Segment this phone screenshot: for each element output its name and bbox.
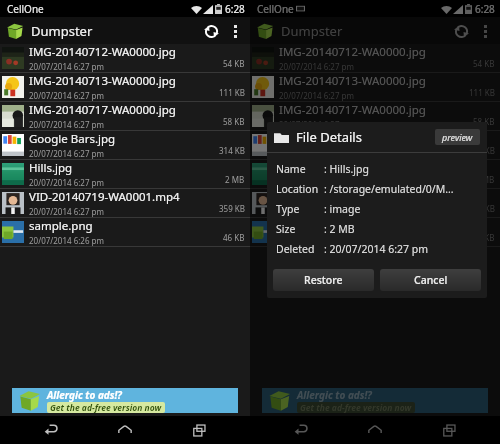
button[interactable]: Back [28, 416, 74, 444]
staticText: 111 KB [219, 87, 245, 98]
button[interactable]: Hills.jpg [0, 160, 250, 189]
button[interactable]: preview [442, 131, 473, 143]
button[interactable]: sample.png [0, 218, 250, 247]
button[interactable]: Home [352, 416, 398, 444]
staticText: 20/07/2014 6:27 pm [279, 119, 354, 130]
staticText: 6:28 [225, 2, 245, 16]
staticText: 20/07/2014 6:27 pm [279, 206, 354, 217]
staticText: : image [324, 202, 361, 216]
staticText: 20/07/2014 6:27 pm [279, 177, 354, 188]
button[interactable]: IMG-20140712-WA0000.jpg [0, 44, 250, 73]
staticText: preview [442, 131, 473, 143]
staticText: sample.png [279, 218, 343, 234]
button[interactable]: IMG-20140713-WA0000.jpg [250, 73, 500, 102]
button[interactable]: IMG-20140712-WA0000.jpg [250, 44, 500, 73]
staticText: 20/07/2014 6:27 pm [279, 148, 354, 159]
staticText: CellOne [257, 2, 294, 16]
button[interactable]: Recents [176, 416, 222, 444]
staticText: Hills.jpg [29, 160, 73, 176]
button[interactable]: Allergic to ads!? [262, 388, 488, 413]
button[interactable]: Home [102, 416, 148, 444]
staticText: CellOne [7, 2, 44, 16]
staticText: 6:28 [475, 2, 495, 16]
staticText: VID-20140719-WA0001.mp4 [29, 189, 180, 205]
button[interactable]: Cancel [380, 269, 481, 291]
staticText: Dumpster [281, 22, 343, 40]
staticText: Google Bars.jpg [29, 131, 116, 147]
staticText: 314 KB [469, 145, 495, 156]
staticText: 20/07/2014 6:27 pm [29, 90, 104, 101]
button[interactable]: IMG-20140717-WA0000.jpg [0, 102, 250, 131]
staticText: : 20/07/2014 6:27 pm [324, 242, 428, 256]
staticText: 20/07/2014 6:27 pm [29, 206, 104, 217]
button[interactable]: Restore [273, 269, 374, 291]
staticText: 20/07/2014 6:27 pm [29, 61, 104, 72]
staticText: 20/07/2014 6:27 pm [29, 119, 104, 130]
button[interactable]: Refresh [198, 18, 224, 44]
staticText: Name [276, 162, 324, 176]
staticText: Allergic to ads!? [297, 388, 372, 402]
staticText: 111 KB [469, 87, 495, 98]
staticText: 54 KB [473, 58, 495, 69]
button[interactable]: VID-20140719-WA0001.mp4 [0, 189, 250, 218]
staticText: 2 MB [225, 174, 245, 185]
staticText: Get the ad-free version now [300, 402, 412, 413]
button[interactable]: Allergic to ads!? [12, 388, 238, 413]
staticText: Size [276, 222, 324, 236]
staticText: 54 KB [223, 58, 245, 69]
button[interactable]: VID-20140719-WA0001.mp4 [250, 189, 500, 218]
staticText: 359 KB [469, 203, 495, 214]
button[interactable]: More options [474, 18, 496, 44]
button[interactable]: Hills.jpg [250, 160, 500, 189]
staticText: 58 KB [223, 116, 245, 127]
staticText: Allergic to ads!? [47, 388, 122, 402]
staticText: IMG-20140717-WA0000.jpg [29, 102, 176, 118]
button[interactable]: Google Bars.jpg [0, 131, 250, 160]
staticText: 2 MB [475, 174, 495, 185]
staticText: Google Bars.jpg [279, 131, 366, 147]
staticText: 20/07/2014 6:26 pm [29, 235, 104, 246]
staticText: Type [276, 202, 324, 216]
button[interactable]: IMG-20140717-WA0000.jpg [250, 102, 500, 131]
staticText: 20/07/2014 6:27 pm [279, 90, 354, 101]
button[interactable]: Back [278, 416, 324, 444]
staticText: : 2 MB [324, 222, 355, 236]
staticText: 46 KB [223, 232, 245, 243]
staticText: : /storage/emulated/0/M… [324, 182, 454, 196]
staticText: 314 KB [219, 145, 245, 156]
staticText: IMG-20140717-WA0000.jpg [279, 102, 426, 118]
staticText: Cancel [414, 273, 448, 287]
staticText: File Details [296, 128, 362, 146]
staticText: Hills.jpg [279, 160, 323, 176]
staticText: Location [276, 182, 324, 196]
staticText: sample.png [29, 218, 93, 234]
staticText: 20/07/2014 6:27 pm [279, 61, 354, 72]
staticText: Restore [304, 273, 343, 287]
staticText: 58 KB [473, 116, 495, 127]
staticText: IMG-20140713-WA0000.jpg [29, 73, 176, 89]
button[interactable]: IMG-20140713-WA0000.jpg [0, 73, 250, 102]
staticText: VID-20140719-WA0001.mp4 [279, 189, 430, 205]
staticText: 20/07/2014 6:27 pm [29, 148, 104, 159]
button[interactable]: sample.png [250, 218, 500, 247]
staticText: IMG-20140713-WA0000.jpg [279, 73, 426, 89]
button[interactable]: Recents [426, 416, 472, 444]
staticText: IMG-20140712-WA0000.jpg [279, 44, 426, 60]
button[interactable]: More options [224, 18, 246, 44]
staticText: 20/07/2014 6:26 pm [279, 235, 354, 246]
staticText: Deleted [276, 242, 324, 256]
button[interactable]: Refresh [448, 18, 474, 44]
staticText: IMG-20140712-WA0000.jpg [29, 44, 176, 60]
staticText: 20/07/2014 6:27 pm [29, 177, 104, 188]
staticText: 46 KB [473, 232, 495, 243]
button[interactable]: Google Bars.jpg [250, 131, 500, 160]
staticText: Dumpster [31, 22, 93, 40]
staticText: : Hills.jpg [324, 162, 369, 176]
staticText: 359 KB [219, 203, 245, 214]
staticText: Get the ad-free version now [50, 402, 162, 413]
